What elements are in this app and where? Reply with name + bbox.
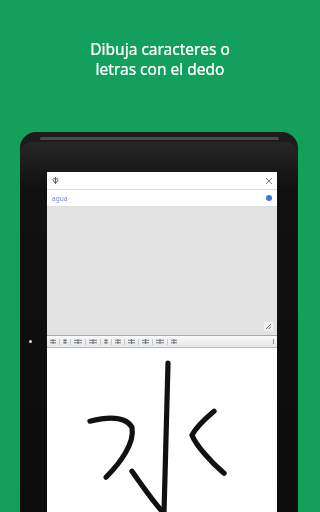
- staticText: agua: [52, 194, 68, 203]
- button[interactable]: agua: [47, 190, 277, 206]
- button[interactable]: [47, 348, 277, 512]
- other: Resize: [264, 322, 273, 331]
- staticText: Dibuja caracteres o letras con el dedo: [90, 38, 230, 79]
- other: Clear: [266, 178, 272, 184]
- button[interactable]: More candidates: [47, 336, 277, 347]
- button[interactable]: Clear: [47, 172, 277, 189]
- other: Insert suggestion: [266, 195, 272, 201]
